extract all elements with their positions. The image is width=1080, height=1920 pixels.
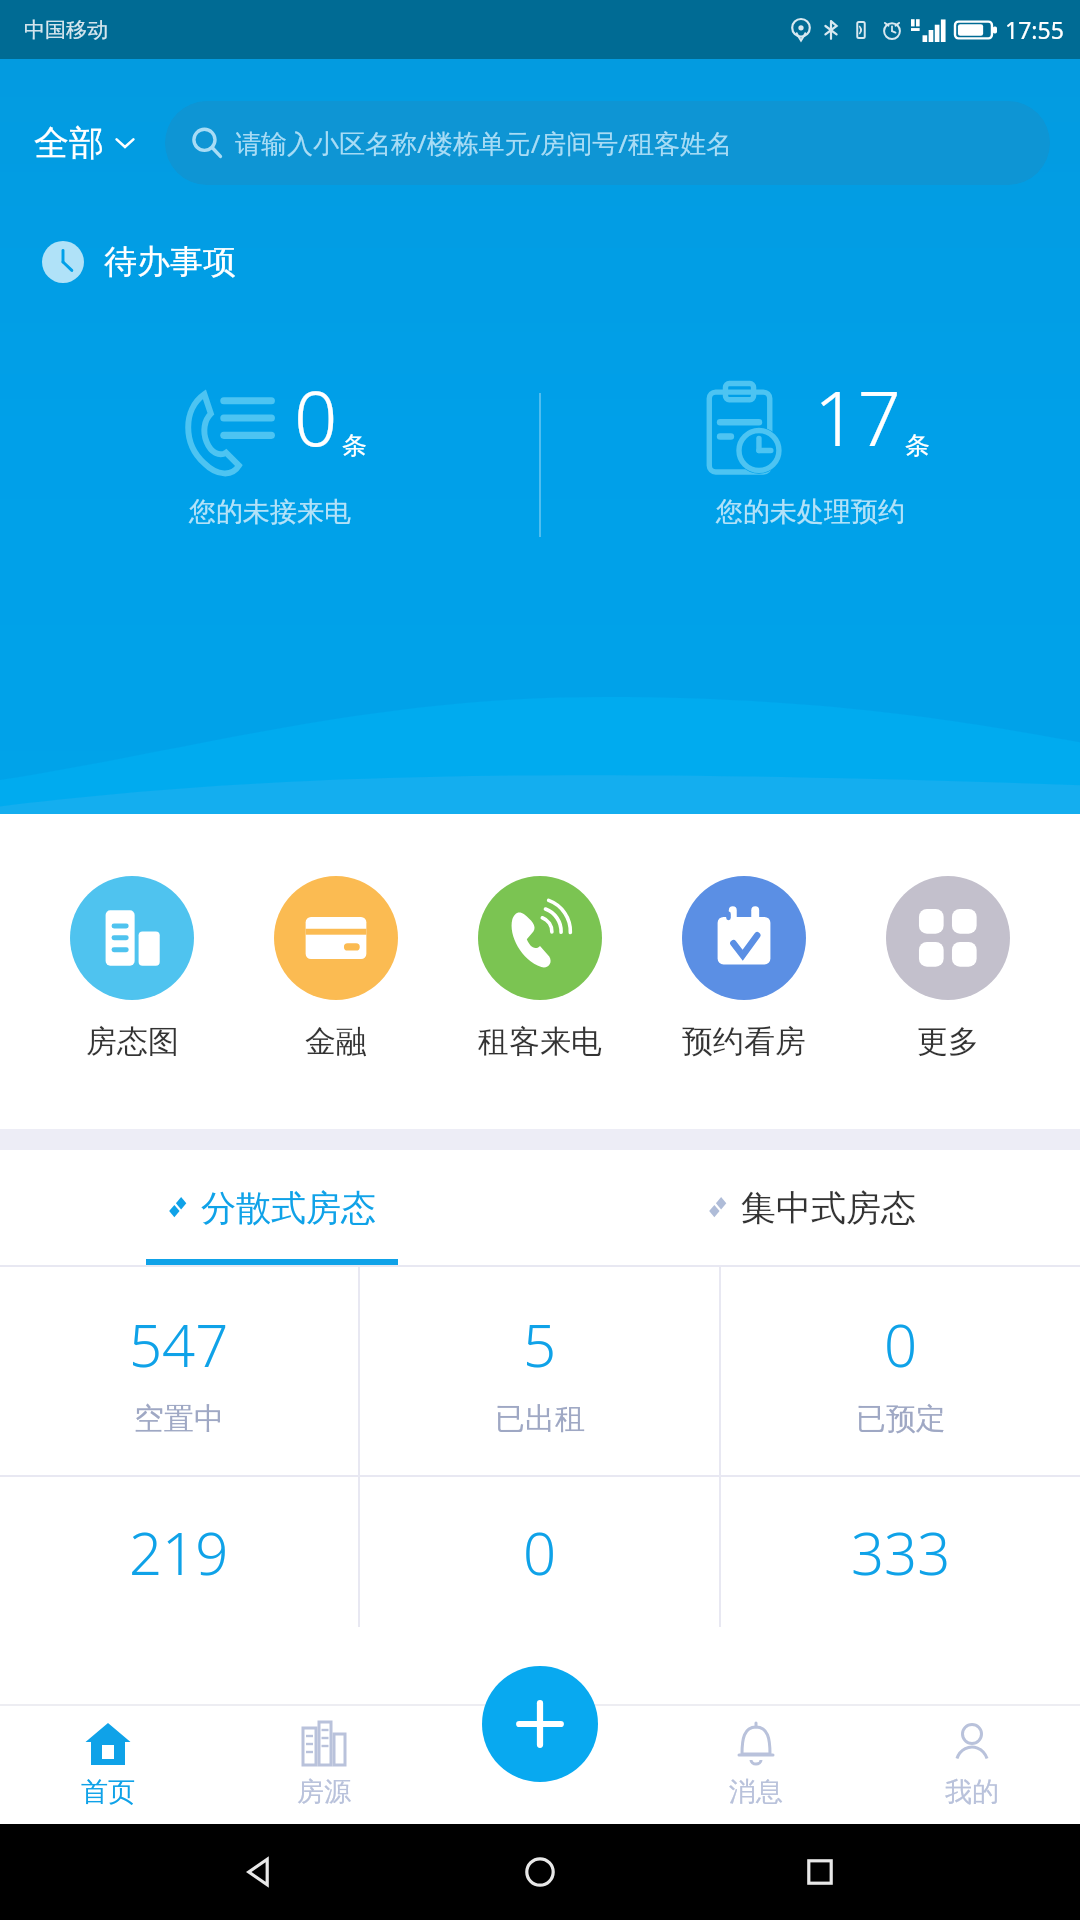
- staticText: 547: [129, 1305, 229, 1384]
- button[interactable]: 金融: [264, 872, 408, 1065]
- staticText: 219: [129, 1513, 229, 1592]
- staticText: 待办事项: [104, 241, 236, 283]
- button[interactable]: 333: [721, 1477, 1080, 1627]
- staticText: 金融: [305, 1022, 367, 1061]
- staticText: 全部: [34, 121, 104, 165]
- button[interactable]: 待办事项: [38, 237, 240, 287]
- button[interactable]: 0: [721, 1267, 1080, 1475]
- staticText: 首页: [81, 1775, 135, 1809]
- button[interactable]: 0: [0, 365, 539, 565]
- button[interactable]: 请输入小区名称/楼栋单元/房间号/租客姓名: [165, 101, 1050, 185]
- staticText: 消息: [729, 1775, 783, 1809]
- staticText: 333: [851, 1513, 951, 1592]
- staticText: 您的未接来电: [189, 495, 351, 529]
- other: Home: [520, 1852, 560, 1892]
- staticText: 我的: [945, 1775, 999, 1809]
- button[interactable]: 我的: [864, 1704, 1080, 1824]
- staticText: 租客来电: [478, 1022, 602, 1061]
- staticText: 17: [814, 365, 901, 469]
- staticText: 请输入小区名称/楼栋单元/房间号/租客姓名: [235, 125, 733, 161]
- button[interactable]: 219: [0, 1477, 358, 1627]
- staticText: 0: [523, 1513, 557, 1592]
- button[interactable]: 消息: [648, 1704, 864, 1824]
- staticText: 条: [342, 430, 367, 461]
- staticText: 更多: [917, 1022, 979, 1061]
- button[interactable]: 分散式房态: [0, 1150, 540, 1265]
- button[interactable]: 全部: [30, 115, 139, 171]
- staticText: 空置中: [134, 1400, 224, 1438]
- button[interactable]: 17: [541, 365, 1080, 565]
- staticText: 已出租: [495, 1400, 585, 1438]
- button[interactable]: 首页: [0, 1704, 216, 1824]
- staticText: 5: [523, 1305, 557, 1384]
- staticText: 已预定: [856, 1400, 946, 1438]
- other: Back: [240, 1852, 280, 1892]
- staticText: 您的未处理预约: [716, 495, 905, 529]
- staticText: 预约看房: [682, 1022, 806, 1061]
- button[interactable]: 租客来电: [468, 872, 612, 1065]
- other: Recents: [800, 1852, 840, 1892]
- button[interactable]: 5: [360, 1267, 719, 1475]
- staticText: 房态图: [86, 1022, 179, 1061]
- button[interactable]: 新增: [482, 1666, 598, 1782]
- button[interactable]: 0: [360, 1477, 719, 1627]
- button[interactable]: 更多: [876, 872, 1020, 1065]
- button[interactable]: 预约看房: [672, 872, 816, 1065]
- staticText: 17:55: [1005, 14, 1064, 45]
- button[interactable]: 房态图: [60, 872, 204, 1065]
- staticText: 0: [294, 365, 338, 469]
- button[interactable]: 547: [0, 1267, 358, 1475]
- staticText: 中国移动: [24, 17, 108, 43]
- button[interactable]: 集中式房态: [540, 1150, 1080, 1265]
- staticText: 0: [884, 1305, 918, 1384]
- staticText: 房源: [297, 1775, 351, 1809]
- button[interactable]: 房源: [216, 1704, 432, 1824]
- staticText: 条: [905, 430, 930, 461]
- staticText: 分散式房态: [201, 1186, 376, 1230]
- staticText: 集中式房态: [741, 1186, 916, 1230]
